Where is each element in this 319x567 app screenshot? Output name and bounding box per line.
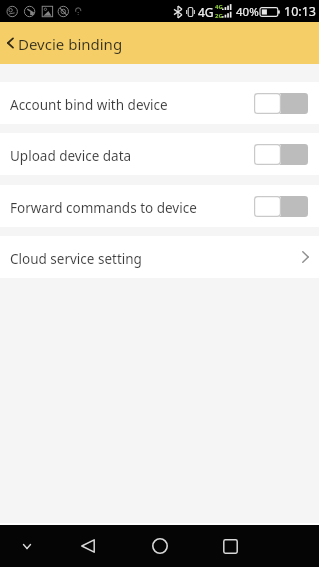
button[interactable]: Forward commands to device <box>0 185 319 227</box>
staticText: Upload device data <box>10 147 132 165</box>
button[interactable]: Home <box>144 530 176 562</box>
staticText: 40% <box>236 4 259 20</box>
staticText: Account bind with device <box>10 96 168 114</box>
button[interactable]: Cloud service setting <box>0 236 319 278</box>
button[interactable]: Back <box>72 530 104 562</box>
button[interactable]: Hide navigation bar <box>11 530 43 562</box>
button[interactable]: Recent apps <box>214 530 246 562</box>
staticText: 2G <box>215 12 223 18</box>
button[interactable]: Back <box>0 22 19 64</box>
staticText: Cloud service setting <box>10 250 142 268</box>
staticText: Forward commands to device <box>10 199 197 217</box>
staticText: 4G <box>215 3 223 11</box>
button[interactable]: Account bind with device <box>0 82 319 124</box>
button[interactable]: Toggle off <box>254 93 308 114</box>
button[interactable]: Toggle off <box>254 196 308 217</box>
button[interactable]: Toggle off <box>254 144 308 165</box>
staticText: 10:13 <box>284 3 316 20</box>
button[interactable]: Upload device data <box>0 133 319 175</box>
staticText: 4G <box>198 4 214 20</box>
staticText: Devcie binding <box>18 34 123 54</box>
